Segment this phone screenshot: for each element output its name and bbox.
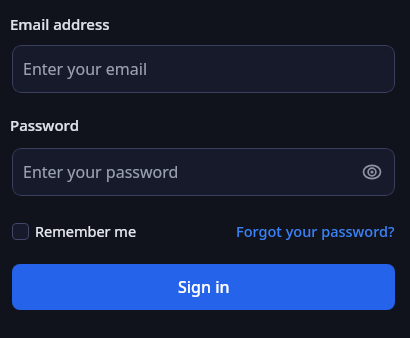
staticText: Email address <box>10 14 110 34</box>
button[interactable]: Remember me <box>12 221 137 241</box>
staticText: Forgot your password? <box>236 221 395 241</box>
staticText: Enter your password <box>23 161 362 183</box>
staticText: Remember me <box>35 221 137 241</box>
staticText: Password <box>10 115 79 135</box>
staticText: Enter your email <box>23 58 148 80</box>
staticText: Sign in <box>178 276 230 298</box>
button[interactable]: Enter your email <box>12 45 395 93</box>
button[interactable]: Forgot your password? <box>236 221 395 241</box>
button[interactable]: Enter your password <box>12 148 395 196</box>
button[interactable]: Sign in <box>12 264 395 310</box>
